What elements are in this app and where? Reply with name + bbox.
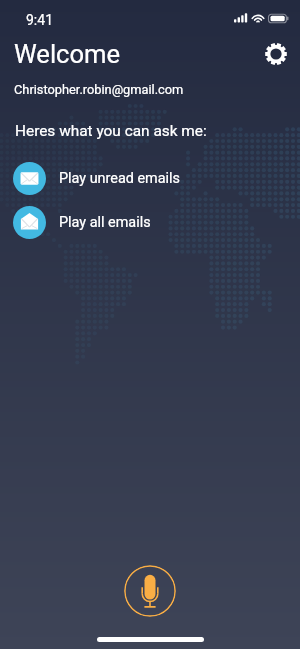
button[interactable]: Settings xyxy=(263,41,289,67)
staticText: Welcome xyxy=(14,39,121,69)
button[interactable]: Microphone xyxy=(124,565,176,617)
staticText: Heres what you can ask me: xyxy=(15,122,207,140)
other: Status icons xyxy=(234,11,288,25)
staticText: Christopher.robin@gmail.com xyxy=(14,82,184,97)
button[interactable]: Play all emails xyxy=(13,206,213,239)
button[interactable]: Play unread emails xyxy=(13,162,213,195)
staticText: Play unread emails xyxy=(59,170,180,187)
staticText: 9:41 xyxy=(26,12,53,28)
staticText: Play all emails xyxy=(59,214,151,231)
